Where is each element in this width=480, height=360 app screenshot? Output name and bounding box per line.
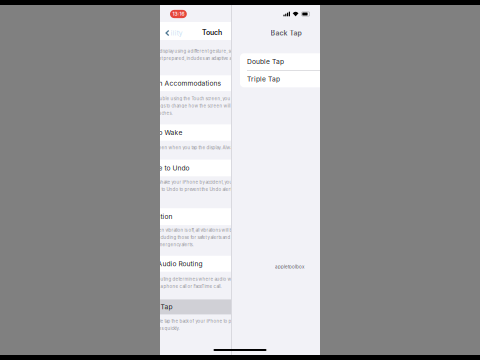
staticText: abled, including those for safety alerts… — [142, 235, 230, 240]
staticText: Tap to Wake — [142, 128, 182, 137]
staticText: rm actions quickly. — [142, 326, 179, 331]
staticText: ility — [171, 29, 183, 37]
button[interactable]: Back Tap — [136, 299, 296, 314]
staticText: other emergency alerts. — [142, 242, 193, 247]
staticText: Double Tap — [247, 58, 284, 66]
staticText: Triple Tap — [247, 75, 280, 83]
staticText: Shake to Undo — [142, 164, 189, 172]
staticText: le Shake to Undo to prevent the Undo ale… — [142, 187, 239, 192]
button[interactable]: Call Audio Routing — [136, 256, 296, 272]
button[interactable]: Vibration — [136, 208, 296, 225]
staticText: audio routing determines where audio wil… — [142, 276, 243, 282]
button[interactable]: Tap to Wake — [136, 124, 296, 141]
staticText: l during a phone call or FaceTime call. — [142, 284, 221, 289]
button[interactable]: Back to Accessibility — [164, 28, 184, 38]
staticText: e content prepared, includes an adaptive… — [142, 56, 238, 61]
staticText: tend to shake your iPhone by accident, y… — [142, 179, 241, 185]
staticText: e or triple tap the back of your iPhone … — [142, 318, 238, 324]
staticText: Call Audio Routing — [142, 260, 202, 268]
staticText: Touch — [202, 28, 222, 37]
staticText: appletoolbox — [275, 264, 304, 269]
staticText: ons.When vibration is off, all vibration… — [142, 227, 235, 233]
staticText: 13:16 — [172, 11, 184, 17]
staticText: The screen when you tap the display. Alw… — [142, 145, 243, 150]
staticText: ust settings to change how the screen wi… — [142, 103, 238, 108]
button[interactable]: Triple Tap — [240, 71, 384, 87]
button[interactable]: Double Tap — [240, 53, 384, 70]
button[interactable]: Touch Accommodations — [136, 75, 296, 91]
staticText: use the display using a different gestur… — [142, 48, 238, 54]
staticText: Vibration — [142, 213, 172, 221]
staticText: Touch Accommodations — [142, 79, 221, 87]
staticText: Back Tap — [270, 29, 301, 37]
button[interactable]: Shake to Undo — [136, 160, 296, 176]
staticText: have trouble using the Touch screen, you… — [142, 96, 239, 101]
staticText: nd to touches. — [142, 110, 172, 116]
staticText: Back Tap — [142, 303, 172, 311]
